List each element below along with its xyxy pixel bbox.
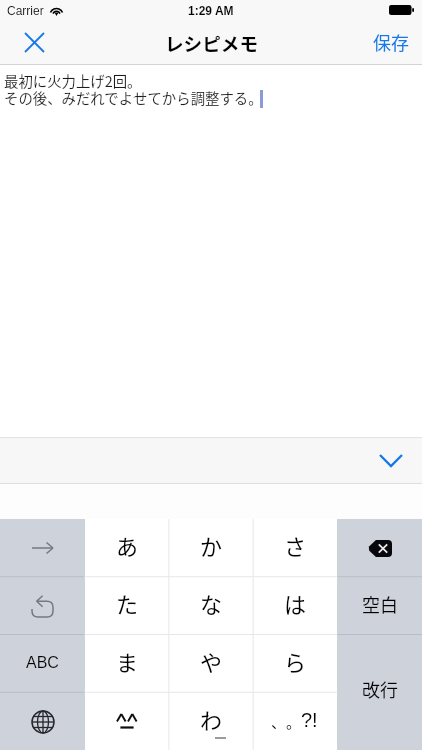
other: Next bbox=[32, 542, 53, 554]
staticText: 改行 bbox=[362, 676, 398, 702]
staticText: わ bbox=[200, 703, 223, 735]
button[interactable]: ら bbox=[253, 635, 337, 693]
staticText: 保存 bbox=[373, 29, 409, 55]
button[interactable]: Hide keyboard bbox=[367, 438, 415, 483]
other: Switch keyboard bbox=[31, 710, 55, 734]
staticText: は bbox=[284, 587, 307, 619]
button[interactable]: や bbox=[169, 635, 253, 693]
other: Undo bbox=[32, 596, 53, 617]
button[interactable]: Close bbox=[0, 20, 60, 64]
staticText: 空白 bbox=[362, 591, 398, 617]
staticText: や bbox=[200, 645, 223, 677]
button[interactable]: 、。 bbox=[253, 693, 337, 750]
staticText: ?! bbox=[301, 709, 318, 731]
button[interactable]: た bbox=[85, 577, 169, 635]
button[interactable]: ABC bbox=[0, 635, 85, 693]
staticText: ABC bbox=[26, 654, 59, 672]
button[interactable]: わ bbox=[169, 693, 253, 750]
other: Delete bbox=[368, 540, 392, 557]
staticText: さ bbox=[284, 529, 307, 561]
button[interactable]: は bbox=[253, 577, 337, 635]
button[interactable] bbox=[85, 693, 169, 750]
staticText: か bbox=[200, 529, 223, 561]
staticText: ら bbox=[284, 645, 307, 677]
button[interactable]: な bbox=[169, 577, 253, 635]
staticText: た bbox=[116, 587, 139, 619]
staticText: 、。 bbox=[271, 711, 302, 733]
staticText: 1:29 AM bbox=[188, 4, 234, 17]
staticText: レシピメモ bbox=[165, 29, 258, 56]
staticText: あ bbox=[116, 529, 139, 561]
button[interactable]: 保存 bbox=[373, 20, 409, 64]
staticText: ま bbox=[116, 645, 139, 677]
button[interactable]: 改行 bbox=[337, 634, 422, 750]
button[interactable]: Switch keyboard bbox=[0, 693, 85, 750]
button[interactable]: あ bbox=[85, 519, 169, 577]
button[interactable]: さ bbox=[253, 519, 337, 577]
button[interactable]: ま bbox=[85, 635, 169, 693]
staticText: 最初に火力上げ2回。 その後、みだれでよせてから調整する。 bbox=[4, 70, 263, 109]
button[interactable]: 空白 bbox=[337, 577, 422, 635]
button[interactable]: Next bbox=[0, 519, 85, 577]
staticText: な bbox=[200, 587, 223, 619]
button[interactable]: Delete bbox=[337, 519, 422, 577]
button[interactable]: か bbox=[169, 519, 253, 577]
button[interactable]: Undo bbox=[0, 577, 85, 635]
staticText: Carrier bbox=[7, 4, 44, 17]
